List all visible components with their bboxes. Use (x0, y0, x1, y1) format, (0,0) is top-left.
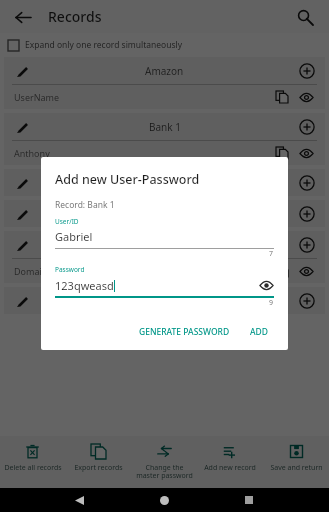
button[interactable]: Copy (273, 88, 291, 106)
button[interactable]: Toggle password visibility (258, 277, 274, 293)
button[interactable]: Add user password (297, 61, 317, 81)
staticText: ADD (250, 326, 268, 338)
staticText: Delete all records (4, 463, 62, 473)
button[interactable]: Expand only one record simultaneously (0, 33, 329, 57)
staticText: Change the master password (136, 463, 193, 480)
staticText: Password (55, 265, 85, 274)
staticText: GENERATE PASSWORD (139, 326, 230, 338)
button[interactable]: Anthony (4, 141, 325, 165)
button[interactable]: Show value (297, 144, 315, 162)
button[interactable]: Edit record (4, 287, 325, 314)
button[interactable]: Add user password (297, 173, 317, 193)
staticText: Add new User-Password (55, 171, 200, 188)
staticText: 123qweasd (55, 278, 114, 293)
button[interactable]: Edit record (4, 57, 325, 84)
staticText: Expand only one record simultaneously (25, 39, 183, 51)
button[interactable]: Show value (297, 88, 315, 106)
button[interactable]: Search (293, 5, 317, 29)
staticText: Save and return (270, 463, 323, 473)
button[interactable]: Copy (273, 262, 291, 280)
button[interactable]: Edit record (12, 235, 32, 255)
staticText: 9 (269, 298, 274, 308)
button[interactable]: Back (12, 6, 34, 28)
button[interactable]: Domain (4, 259, 325, 283)
button[interactable]: Show value (297, 262, 315, 280)
button[interactable]: Copy (273, 144, 291, 162)
button[interactable]: Add user password (297, 117, 317, 137)
button[interactable]: Change the master password (131, 436, 197, 488)
staticText: Gabriel (55, 229, 93, 244)
button[interactable]: Edit record (12, 173, 32, 193)
button[interactable]: Edit record (12, 61, 32, 81)
button[interactable]: Export records (65, 436, 131, 488)
staticText: 7 (269, 249, 274, 259)
staticText: Add new record (204, 463, 256, 473)
button[interactable]: Add user password (297, 204, 317, 224)
button[interactable]: Save and return (263, 436, 329, 488)
staticText: Export records (74, 463, 123, 473)
button[interactable]: GENERATE PASSWORD (133, 322, 236, 342)
staticText: Domain (14, 265, 48, 277)
staticText: Amazon (145, 64, 184, 78)
button[interactable]: Edit record (12, 117, 32, 137)
button[interactable]: Add new record (197, 436, 263, 488)
staticText: Anthony (14, 147, 50, 159)
button[interactable]: Edit record (4, 231, 325, 258)
button[interactable]: ADD (244, 322, 274, 342)
button[interactable]: Add user password (297, 235, 317, 255)
button[interactable]: Edit record (4, 169, 325, 196)
staticText: Bank 1 (149, 120, 181, 134)
button[interactable]: Edit record (4, 113, 325, 140)
staticText: Record: Bank 1 (55, 199, 115, 211)
button[interactable]: Edit record (4, 200, 325, 227)
staticText: UserName (14, 91, 60, 103)
button[interactable]: UserName (4, 85, 325, 109)
button[interactable]: Edit record (12, 204, 32, 224)
staticText: User/ID (55, 217, 79, 226)
button[interactable]: Add user password (297, 291, 317, 311)
button[interactable]: Delete all records (0, 436, 65, 488)
staticText: Records (48, 7, 102, 26)
button[interactable]: Edit record (12, 291, 32, 311)
